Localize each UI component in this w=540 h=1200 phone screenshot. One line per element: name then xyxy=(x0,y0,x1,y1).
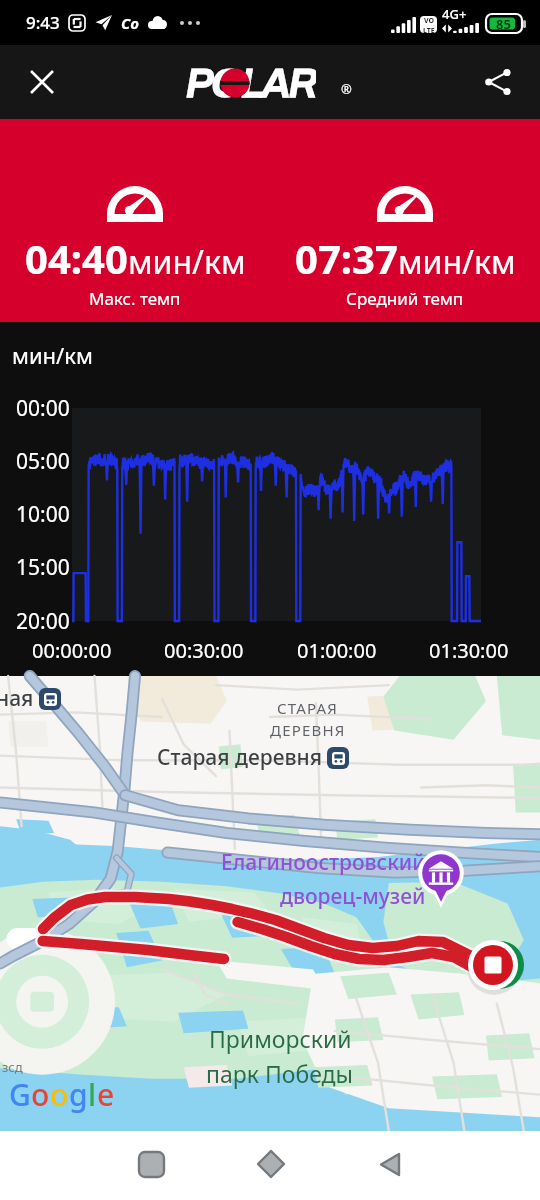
staticText: 85 xyxy=(496,15,511,33)
staticText: ® xyxy=(341,80,352,98)
staticText: l xyxy=(88,1074,97,1115)
staticText: 04:40 xyxy=(25,231,128,285)
button[interactable]: Back xyxy=(360,1134,420,1194)
button[interactable]: Recent apps xyxy=(121,1134,181,1194)
staticText: СТАРАЯ xyxy=(277,698,339,718)
button[interactable]: 04:40 xyxy=(0,119,270,322)
button[interactable]: Close xyxy=(16,56,68,108)
staticText: 00:00:00 xyxy=(32,637,112,664)
staticText: VO xyxy=(424,16,435,26)
staticText: зсд xyxy=(2,1058,23,1076)
staticText: мин/км xyxy=(128,240,246,284)
staticText: 9:43 xyxy=(26,11,60,34)
staticText: ная xyxy=(0,684,34,713)
staticText: 00:00 xyxy=(16,394,70,423)
staticText: e xyxy=(97,1074,115,1115)
button[interactable]: 07:37 xyxy=(270,119,540,322)
staticText: мин/км xyxy=(398,240,516,284)
staticText: o xyxy=(50,1074,69,1115)
staticText: Средний темп xyxy=(346,287,464,310)
staticText: 20:00 xyxy=(16,607,70,636)
staticText: 00:30:00 xyxy=(164,637,244,664)
staticText: 10:00 xyxy=(16,500,70,529)
button[interactable]: СТАРАЯ xyxy=(0,676,540,1131)
staticText: 4G+ xyxy=(442,5,467,23)
staticText: Елагиноостровский xyxy=(221,848,426,877)
staticText: LTE xyxy=(423,26,435,33)
staticText: o xyxy=(31,1074,50,1115)
staticText: Приморский xyxy=(209,1023,352,1054)
button[interactable]: Share xyxy=(472,56,524,108)
staticText: парк Победы xyxy=(206,1058,354,1089)
staticText: 01:00:00 xyxy=(297,637,377,664)
staticText: 05:00 xyxy=(16,447,70,476)
staticText: ДЕРЕВНЯ xyxy=(270,720,346,740)
staticText: 01:30:00 xyxy=(429,637,509,664)
staticText: g xyxy=(69,1074,88,1115)
staticText: дворец-музей xyxy=(280,882,426,911)
staticText: POLAR xyxy=(186,62,316,104)
staticText: 07:37 xyxy=(295,231,398,285)
button[interactable]: Home xyxy=(241,1134,301,1194)
staticText: G xyxy=(9,1074,31,1115)
staticText: Co xyxy=(121,13,139,33)
staticText: Макс. темп xyxy=(89,287,181,310)
staticText: Старая деревня xyxy=(157,743,322,772)
staticText: мин/км xyxy=(12,340,93,370)
staticText: 15:00 xyxy=(16,553,70,582)
